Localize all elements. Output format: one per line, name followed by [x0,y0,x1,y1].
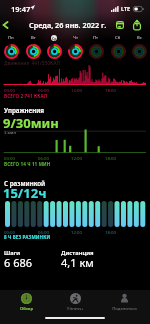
staticText: 12:00 [71,87,82,93]
staticText: 06:00 [38,87,49,93]
staticText: Упражнения [4,106,45,115]
staticText: 18:00 [105,155,116,161]
staticText: ВСЕГО 14 Ч 11 МИН [4,161,51,167]
staticText: 18:00 [105,229,116,235]
staticText: LTE [121,5,131,12]
staticText: Пн [8,35,14,41]
button[interactable]: Сб [108,35,128,59]
staticText: Пт [93,35,99,41]
staticText: 4,1 км [61,255,94,270]
button[interactable]: Пн [1,35,21,59]
button[interactable]: Вс [129,35,149,59]
staticText: Fitness+ [67,306,84,312]
staticText: 06:00 [38,229,49,235]
staticText: 9/30мин [3,114,59,132]
staticText: 12:00 [71,155,82,161]
staticText: 8 Ч БЕЗ РАЗМИНКИ [4,234,51,240]
staticText: 6 686 [4,255,33,270]
staticText: Дистанция [61,249,94,257]
staticText: 06:00 [38,155,49,161]
staticText: Ср [52,36,57,41]
button[interactable]: Календарь [113,19,127,31]
staticText: Чт [73,35,78,41]
staticText: Поделиться [112,306,137,312]
button[interactable]: Чт [65,35,85,59]
staticText: 00:00 [4,229,15,235]
button[interactable]: Пт [86,35,106,59]
staticText: 19:47 [11,4,31,14]
button[interactable]: Поделиться [130,19,144,31]
staticText: ВСЕГО 2 741 ККАЛ [4,93,48,99]
staticText: 00:00 [4,155,15,161]
button[interactable]: Fitness+ [52,293,98,312]
button[interactable]: Назад [0,19,13,31]
button[interactable]: Поделиться [101,293,147,312]
staticText: 00:00 [4,87,15,93]
staticText: Вс [137,35,142,41]
staticText: Вт [31,35,36,41]
button[interactable]: Обзор [3,293,49,312]
staticText: Шаги [4,249,21,257]
button[interactable]: Ср [44,35,64,59]
staticText: 12:00 [71,229,82,235]
staticText: Сб [115,35,121,41]
staticText: 3 мин [4,129,17,135]
staticText: 18:00 [105,87,116,93]
staticText: Среда, 26 янв. 2022 г. [29,20,107,30]
staticText: 15/12ч [3,184,47,202]
staticText: Движение 441/550КАЛ [4,60,60,67]
staticText: Обзор [20,306,33,312]
staticText: С разминкой [4,179,46,188]
button[interactable]: Вт [23,35,43,59]
